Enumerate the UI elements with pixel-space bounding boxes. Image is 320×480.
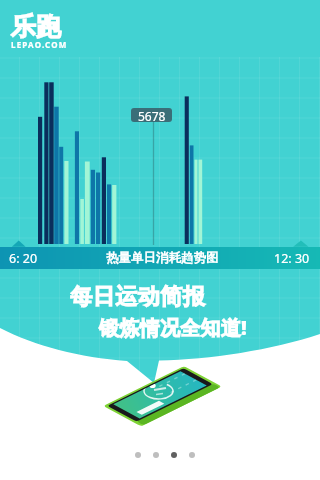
staticText: 乐跑: [11, 11, 61, 42]
button[interactable]: [135, 452, 141, 458]
staticText: 6: 20: [9, 250, 38, 267]
staticText: 5678: [138, 108, 166, 122]
staticText: LEPAO.COM: [11, 39, 68, 50]
button[interactable]: [153, 452, 159, 458]
staticText: 每日运动简报: [70, 283, 205, 311]
button[interactable]: [189, 452, 195, 458]
staticText: 12: 30: [274, 250, 310, 267]
button[interactable]: [171, 452, 177, 458]
staticText: 锻炼情况全知道!: [99, 314, 248, 341]
staticText: 热量单日消耗趋势图: [106, 250, 219, 266]
